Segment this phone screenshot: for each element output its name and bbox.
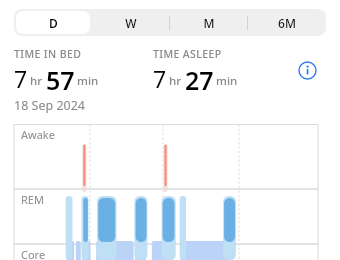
staticText: min <box>216 73 238 89</box>
button[interactable]: W <box>94 11 168 34</box>
staticText: 6M <box>278 15 296 31</box>
staticText: D <box>49 15 58 31</box>
button[interactable]: D <box>16 11 90 34</box>
button[interactable]: M <box>172 11 246 34</box>
staticText: hr <box>169 73 182 89</box>
staticText: REM <box>21 192 44 207</box>
staticText: min <box>77 73 99 89</box>
staticText: Awake <box>21 127 55 142</box>
staticText: TIME IN BED <box>14 47 82 61</box>
staticText: Core <box>21 247 46 260</box>
staticText: 18 Sep 2024 <box>14 97 86 114</box>
staticText: W <box>125 15 137 31</box>
staticText: hr <box>30 73 43 89</box>
staticText: 7 <box>153 63 167 91</box>
button[interactable]: 6M <box>250 11 324 34</box>
staticText: 57 <box>46 63 75 91</box>
staticText: TIME ASLEEP <box>153 47 222 61</box>
staticText: 7 <box>14 63 28 91</box>
staticText: M <box>203 15 215 31</box>
button[interactable]: More information <box>296 59 318 81</box>
staticText: 27 <box>185 63 214 91</box>
